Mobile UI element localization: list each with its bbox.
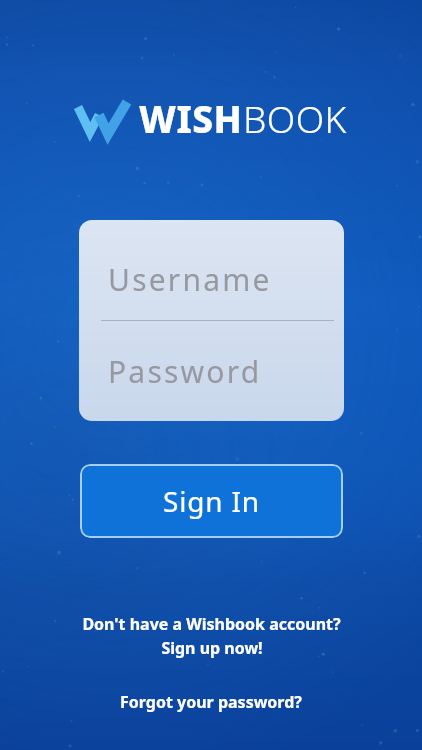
staticText: Password — [108, 351, 262, 392]
button[interactable]: Password — [79, 321, 344, 421]
button[interactable]: Username — [79, 220, 344, 320]
button[interactable]: Don't have a Wishbook account? — [82, 613, 341, 659]
staticText: Sign In — [163, 482, 260, 520]
staticText: Username — [108, 259, 272, 300]
button[interactable]: Sign In — [80, 464, 343, 538]
staticText: BOOK — [243, 93, 347, 143]
staticText: WISH — [139, 93, 243, 143]
staticText: Sign up now! — [161, 637, 263, 659]
button[interactable]: Forgot your password? — [120, 691, 302, 713]
staticText: Don't have a Wishbook account? — [82, 613, 341, 635]
